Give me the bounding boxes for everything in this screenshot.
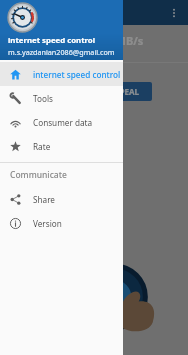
staticText: 1.0 MB/s <box>97 33 144 48</box>
staticText: m.s.yazdanian2086@gmail.com <box>8 47 115 57</box>
staticText: Consumer data <box>33 117 93 128</box>
button[interactable]: APPEAL <box>96 82 152 101</box>
button[interactable]: internet speed control <box>0 62 123 86</box>
staticText: internet speed control <box>8 35 96 46</box>
staticText: Version <box>33 218 62 229</box>
staticText: Rate <box>33 141 51 152</box>
button[interactable]: More options <box>164 3 184 23</box>
button[interactable]: Consumer data <box>0 110 123 134</box>
button[interactable]: internet speed control <box>0 0 123 60</box>
button[interactable]: Rate <box>0 134 123 158</box>
staticText: Tools <box>33 93 53 104</box>
staticText: Communicate <box>10 169 67 181</box>
button[interactable]: Tools <box>0 86 123 110</box>
button[interactable]: Version <box>0 211 123 235</box>
staticText: APPEAL <box>109 86 139 97</box>
staticText: internet speed control <box>33 69 121 80</box>
button[interactable]: Share <box>0 187 123 211</box>
staticText: Share <box>33 194 55 205</box>
